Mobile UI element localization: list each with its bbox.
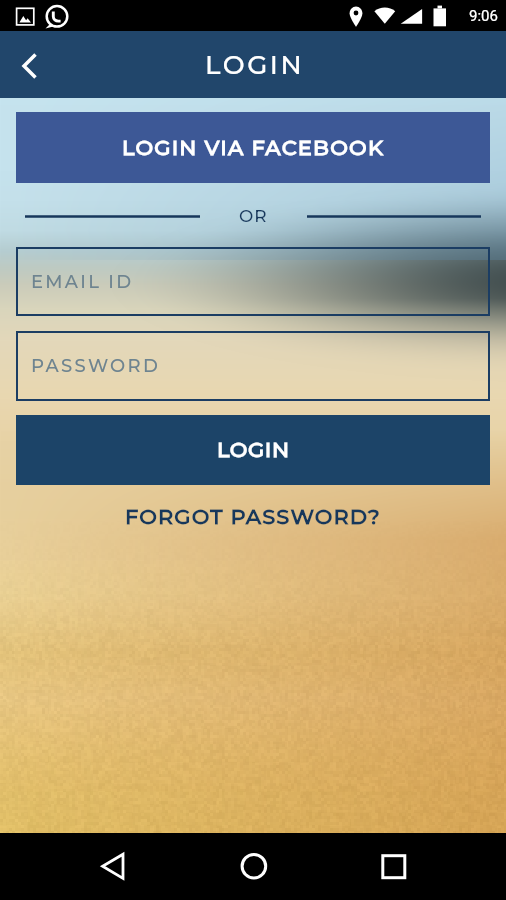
button[interactable]: Recent apps: [357, 833, 429, 900]
staticText: LOGIN: [217, 437, 290, 463]
button[interactable]: EMAIL ID: [16, 247, 490, 316]
button[interactable]: Back: [7, 41, 55, 89]
staticText: OR: [239, 206, 268, 227]
button[interactable]: Back: [77, 833, 149, 900]
staticText: FORGOT PASSWORD?: [125, 504, 381, 530]
button[interactable]: Home: [217, 833, 289, 900]
button[interactable]: LOGIN VIA FACEBOOK: [16, 112, 490, 183]
button[interactable]: PASSWORD: [16, 331, 490, 401]
button[interactable]: FORGOT PASSWORD?: [115, 495, 391, 539]
staticText: LOGIN: [205, 49, 305, 81]
staticText: PASSWORD: [31, 355, 161, 377]
button[interactable]: LOGIN: [16, 415, 490, 485]
staticText: EMAIL ID: [31, 271, 134, 293]
staticText: LOGIN VIA FACEBOOK: [122, 135, 385, 161]
staticText: 9:06: [469, 7, 498, 25]
